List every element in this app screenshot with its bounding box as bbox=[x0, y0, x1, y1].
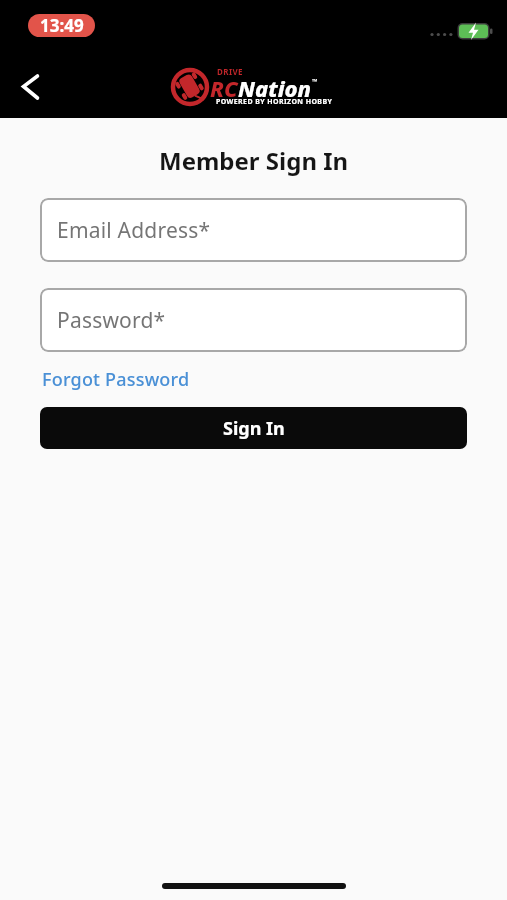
staticText: ™ bbox=[312, 77, 318, 87]
staticText: DRIVE bbox=[217, 66, 243, 77]
staticText: Password* bbox=[57, 306, 166, 335]
button[interactable] bbox=[12, 68, 52, 108]
staticText: RC bbox=[210, 73, 238, 103]
button[interactable]: Sign In bbox=[40, 407, 467, 449]
staticText: Sign In bbox=[223, 416, 285, 441]
staticText: Forgot Password bbox=[42, 367, 190, 392]
staticText: Nation bbox=[238, 73, 312, 103]
button[interactable]: Forgot Password bbox=[42, 367, 190, 392]
staticText: 13:49 bbox=[40, 14, 84, 37]
staticText: POWERED BY HORIZON HOBBY bbox=[216, 97, 333, 107]
staticText: Email Address* bbox=[57, 216, 211, 245]
staticText: Member Sign In bbox=[159, 144, 349, 177]
button[interactable]: Email Address* bbox=[40, 198, 467, 262]
button[interactable]: Password* bbox=[40, 288, 467, 352]
